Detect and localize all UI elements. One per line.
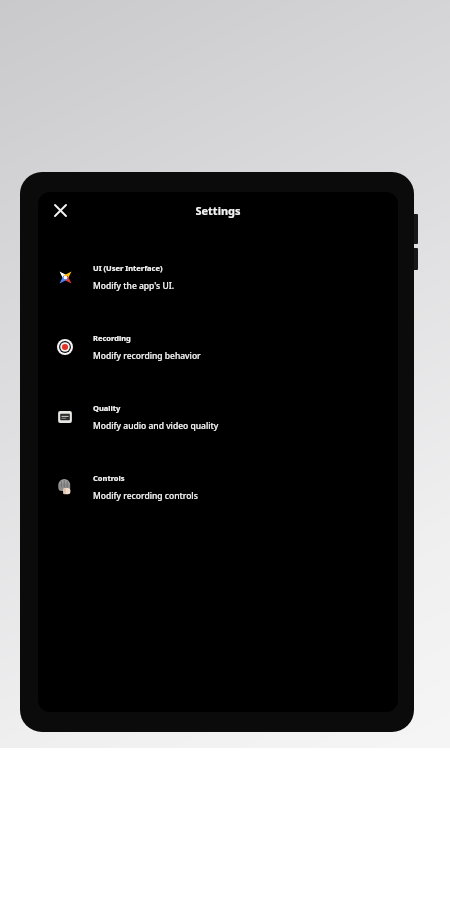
button[interactable]: Controls [38,452,398,522]
staticText: Modify recording controls [93,490,198,502]
staticText: Modify audio and video quality [93,420,219,432]
button[interactable]: Quality [38,382,398,452]
staticText: Settings [195,203,241,218]
button[interactable]: UI (User Interface) [38,242,398,312]
button[interactable]: Recording [38,312,398,382]
staticText: Controls [93,473,125,483]
staticText: Recording [93,333,131,343]
staticText: UI (User Interface) [93,263,163,273]
staticText: Modify the app's UI. [93,280,174,292]
staticText: Quality [93,403,121,413]
button[interactable]: Close [46,196,74,224]
staticText: Modify recording behavior [93,350,201,362]
